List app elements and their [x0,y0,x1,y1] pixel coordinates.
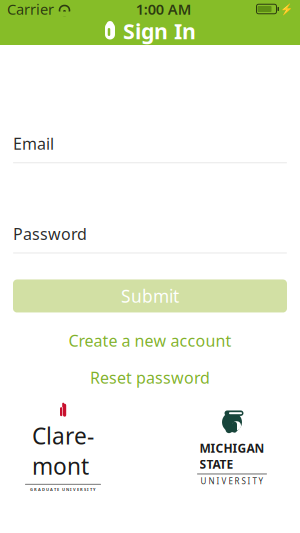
staticText: Submit [121,284,179,307]
staticText: G R A D U A T E U N I V E R S I T Y [30,487,96,492]
staticText: Carrier [7,0,54,19]
button[interactable]: Submit [13,279,287,312]
staticText: Create a new account [68,330,231,351]
staticText: Password [13,223,87,244]
button[interactable]: Reset password [13,368,287,386]
staticText: U N I V E R S I T Y [200,476,263,486]
button[interactable]: Create a new account [13,331,287,349]
staticText: Claremont [32,421,94,481]
staticText: ⚡ [280,3,293,15]
staticText: Reset password [90,367,210,388]
staticText: 1:00 AM [136,0,192,19]
staticText: MICHIGAN STATE [199,440,264,472]
staticText: Sign In [123,17,196,45]
staticText: Email [13,133,54,154]
